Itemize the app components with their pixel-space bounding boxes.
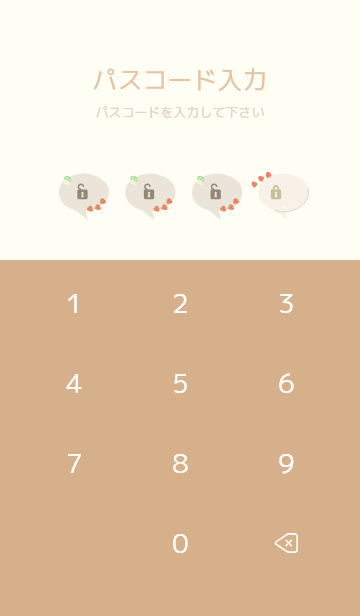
staticText: 7 bbox=[66, 444, 83, 482]
staticText: 3 bbox=[278, 284, 295, 322]
button[interactable]: 1 bbox=[21, 263, 127, 343]
button[interactable]: 5 bbox=[127, 343, 233, 423]
staticText: パスコード入力 bbox=[0, 62, 360, 97]
staticText: 8 bbox=[172, 444, 189, 482]
staticText: 4 bbox=[66, 364, 83, 402]
button[interactable]: 7 bbox=[21, 423, 127, 503]
button[interactable]: 4 bbox=[21, 343, 127, 423]
staticText: 1 bbox=[66, 284, 83, 322]
staticText: 6 bbox=[278, 364, 295, 402]
staticText: 5 bbox=[172, 364, 189, 402]
staticText: パスコードを入力して下さい bbox=[0, 103, 360, 121]
button[interactable]: 2 bbox=[127, 263, 233, 343]
staticText: 0 bbox=[172, 524, 189, 562]
button[interactable]: 6 bbox=[233, 343, 339, 423]
button[interactable]: 8 bbox=[127, 423, 233, 503]
button[interactable]: 9 bbox=[233, 423, 339, 503]
staticText: 2 bbox=[172, 284, 189, 322]
button[interactable]: 0 bbox=[127, 503, 233, 583]
button[interactable]: 3 bbox=[233, 263, 339, 343]
staticText: 9 bbox=[278, 444, 295, 482]
button[interactable]: Delete bbox=[233, 503, 339, 583]
